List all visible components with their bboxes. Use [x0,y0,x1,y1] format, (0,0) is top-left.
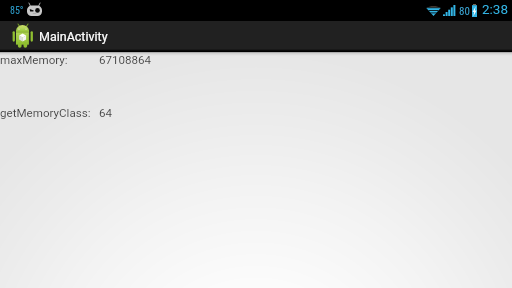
staticText: 67108864 [99,53,152,67]
other: Signal strength [443,5,456,16]
staticText: MainActivity [39,29,108,44]
staticText: maxMemory: [0,53,68,67]
other: Battery [472,4,477,17]
staticText: 80 [459,5,470,18]
staticText: 2:38 [482,1,509,17]
other: App icon [13,24,33,48]
other: CyanogenMod [27,3,42,16]
staticText: 64 [99,106,113,120]
staticText: getMemoryClass: [0,106,91,120]
staticText: 85° [10,5,24,17]
other: Wi-Fi [426,5,441,16]
button[interactable]: App icon [0,24,118,48]
